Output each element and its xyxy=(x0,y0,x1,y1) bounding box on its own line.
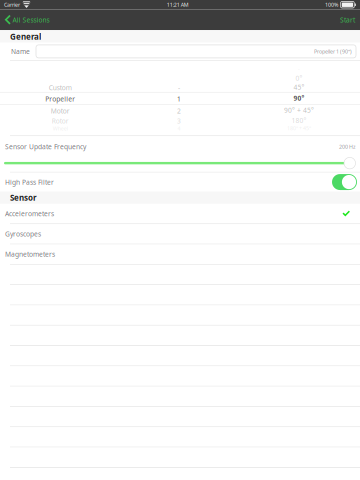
staticText: 3 xyxy=(177,116,181,125)
staticText: 1 xyxy=(177,94,181,103)
button[interactable]: Magnetometers xyxy=(0,244,360,264)
staticText: 11:21 AM xyxy=(167,1,189,8)
staticText: 90° xyxy=(293,94,304,103)
staticText: Wheel xyxy=(53,125,68,132)
staticText: 2 xyxy=(177,106,181,115)
button[interactable]: Accelerometers xyxy=(0,204,360,223)
staticText: All Sessions xyxy=(12,15,49,24)
staticText: 4 xyxy=(177,125,180,132)
staticText: High Pass Filter xyxy=(5,178,54,186)
staticText: Rotor xyxy=(52,116,69,125)
staticText: 100% xyxy=(325,1,338,8)
staticText: Magnetometers xyxy=(5,250,55,259)
staticText: 90° + 45° xyxy=(284,106,314,115)
button[interactable]: Gyroscopes xyxy=(0,224,360,244)
staticText: 45° xyxy=(293,83,304,92)
button[interactable]: Start xyxy=(330,9,360,30)
staticText: Carrier xyxy=(4,1,20,8)
staticText: - xyxy=(178,83,180,92)
staticText: 180° + 45° xyxy=(287,125,311,132)
staticText: 200 Hz xyxy=(339,143,356,150)
staticText: Custom xyxy=(49,83,72,92)
button[interactable]: High Pass Filter xyxy=(332,174,357,190)
staticText: 180° xyxy=(291,116,306,125)
staticText: Start xyxy=(340,15,355,24)
staticText: Propeller 1 (90°) xyxy=(314,48,352,55)
staticText: Sensor Update Frequency xyxy=(5,142,86,151)
staticText: 0° xyxy=(295,74,302,82)
staticText: General xyxy=(10,31,41,42)
staticText: Gyroscopes xyxy=(5,229,41,238)
staticText: Accelerometers xyxy=(5,209,54,218)
button[interactable]: All Sessions xyxy=(0,9,57,30)
staticText: Sensor xyxy=(10,192,37,203)
staticText: Name xyxy=(11,47,30,56)
staticText: Motor xyxy=(51,106,70,115)
staticText: Propeller xyxy=(45,94,75,103)
